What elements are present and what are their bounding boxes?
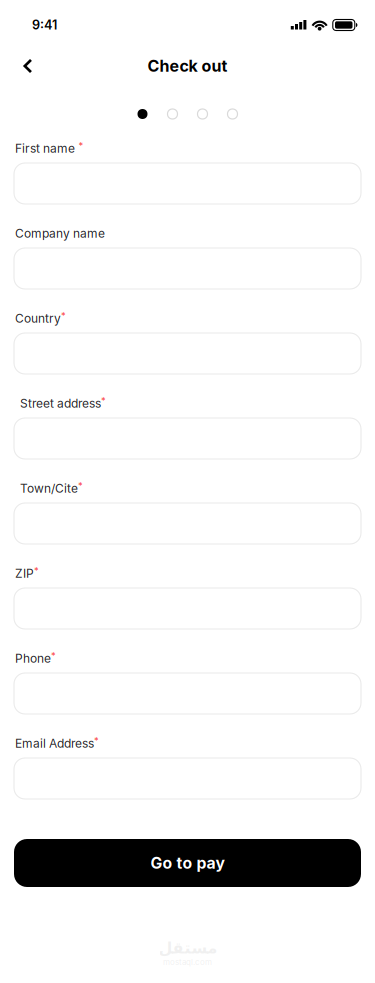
button[interactable]: Step 3 of 4	[197, 109, 207, 119]
staticText: Email Address	[15, 736, 94, 750]
staticText: *	[51, 650, 56, 661]
staticText: Go to pay	[150, 853, 224, 872]
staticText: 9:41	[32, 17, 57, 33]
button[interactable]: Back	[0, 49, 48, 83]
staticText: mostaql.com	[163, 957, 212, 967]
staticText: Country	[15, 311, 61, 325]
staticText: *	[61, 310, 66, 321]
staticText: *	[78, 480, 83, 491]
button[interactable]: Step 2 of 4	[167, 109, 177, 119]
staticText: *	[94, 735, 99, 746]
button[interactable]: Step 4 of 4	[227, 109, 237, 119]
button[interactable]: Step 1 of 4, current	[137, 109, 147, 119]
staticText: مستقل	[158, 939, 217, 957]
staticText: Street address	[20, 396, 101, 410]
staticText: Town/Cite	[20, 481, 78, 495]
staticText: *	[34, 565, 39, 576]
staticText: Company name	[15, 226, 105, 240]
staticText: ZIP	[15, 566, 34, 580]
staticText: *	[78, 140, 83, 151]
button[interactable]: Go to pay	[14, 839, 361, 887]
staticText: Phone	[15, 651, 51, 665]
staticText: Check out	[147, 56, 227, 76]
staticText: *	[101, 395, 106, 406]
staticText: First name	[15, 141, 75, 155]
